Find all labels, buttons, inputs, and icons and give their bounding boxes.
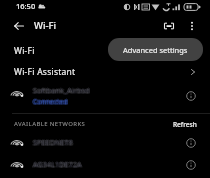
staticText: Softbank_Airbsd [34,86,91,96]
staticText: AG34L1DE72A [33,160,82,170]
staticText: SPEEDNET8 [33,137,73,147]
staticText: Wi-Fi [14,45,35,57]
button[interactable]: Refresh [170,117,200,131]
staticText: SPEEDNET8 [33,138,73,148]
button[interactable]: SPEEDNET8 [0,132,210,154]
staticText: Softbank_Airbsd [33,86,90,96]
staticText: Wi-Fi [34,19,57,32]
staticText: AG34L1DE72A [32,161,81,171]
staticText: Connected [34,97,69,106]
staticText: AVAILABLE NETWORKS [14,120,86,128]
button[interactable]: Back [7,14,30,37]
staticText: SPEEDNET8 [32,138,72,148]
staticText: Softbank_Airbsd [33,87,90,97]
staticText: Softbank_Airbsd [34,87,91,97]
staticText: SPEEDNET8 [33,139,73,149]
button[interactable]: Network details [183,135,199,151]
button[interactable]: Softbank_Airbsd [0,83,210,109]
staticText: Softbank_Airbsd [33,85,90,95]
staticText: Softbank_Airbsd [34,86,91,96]
staticText: SPEEDNET8 [32,138,72,148]
staticText: Connected [34,97,69,106]
staticText: Advanced settings [123,45,188,55]
staticText: SPEEDNET8 [34,138,74,148]
staticText: AG34L1DE72A [34,160,83,170]
staticText: SPEEDNET8 [34,139,74,149]
staticText: AG34L1DE72A [33,161,82,171]
button[interactable]: Wi-Fi [0,40,210,62]
staticText: 16:50 [16,1,36,11]
button[interactable]: Advanced settings [108,38,203,61]
staticText: Connected [34,98,69,107]
staticText: Connected [32,98,67,107]
staticText: AG34L1DE72A [33,159,82,169]
staticText: AG34L1DE72A [34,160,83,170]
button[interactable]: Network details [183,88,199,104]
button[interactable]: More options [180,14,203,37]
staticText: AG34L1DE72A [32,160,81,170]
staticText: Wi-Fi Assistant [14,66,76,78]
staticText: SPEEDNET8 [32,139,72,149]
staticText: SPEEDNET8 [34,138,74,148]
staticText: Connected [33,98,68,107]
staticText: Connected [33,96,68,105]
staticText: Connected [33,97,68,106]
staticText: Softbank_Airbsd [32,86,89,96]
staticText: Connected [32,97,67,106]
staticText: Connected [32,97,67,106]
staticText: Softbank_Airbsd [32,87,89,97]
button[interactable]: AG34L1DE72A [0,154,210,176]
button[interactable]: Wi-Fi Assistant [0,61,210,83]
button[interactable]: Share Wi-Fi [157,14,180,37]
staticText: AG34L1DE72A [34,161,83,171]
button[interactable]: Network details [183,157,199,173]
staticText: AG34L1DE72A [32,160,81,170]
staticText: Softbank_Airbsd [32,86,89,96]
staticText: Refresh [173,120,197,128]
